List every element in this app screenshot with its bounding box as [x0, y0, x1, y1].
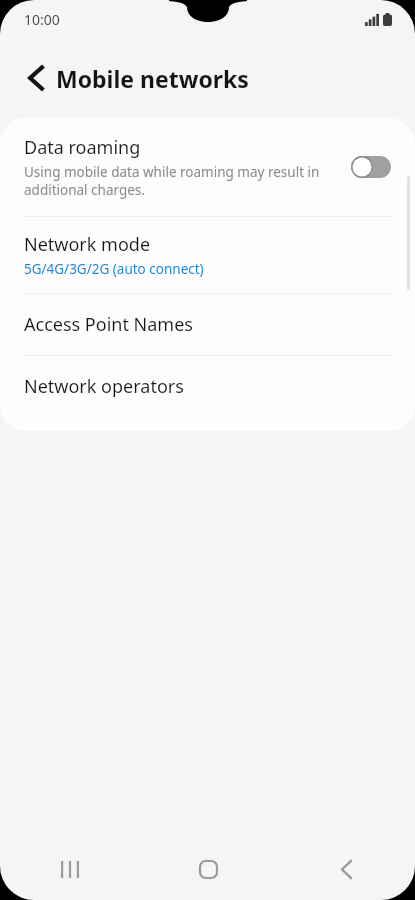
staticText: 10:00	[24, 10, 60, 29]
button[interactable]: Recents	[0, 838, 139, 900]
button[interactable]: Home	[139, 838, 277, 900]
staticText: Network mode	[24, 232, 151, 257]
button[interactable]: Data roaming toggle, off	[351, 156, 391, 178]
button[interactable]: Access Point Names	[0, 294, 415, 355]
staticText: 5G/4G/3G/2G (auto connect)	[24, 260, 204, 278]
button[interactable]: Back	[277, 838, 415, 900]
staticText: Using mobile data while roaming may resu…	[24, 163, 324, 199]
button[interactable]: Data roaming	[0, 118, 415, 216]
staticText: Network operators	[24, 374, 184, 399]
staticText: Data roaming	[24, 135, 141, 160]
staticText: Access Point Names	[24, 312, 193, 337]
button[interactable]: Back	[14, 56, 58, 100]
button[interactable]: Network mode	[0, 217, 415, 293]
button[interactable]: Network operators	[0, 356, 415, 417]
staticText: Mobile networks	[56, 63, 249, 94]
